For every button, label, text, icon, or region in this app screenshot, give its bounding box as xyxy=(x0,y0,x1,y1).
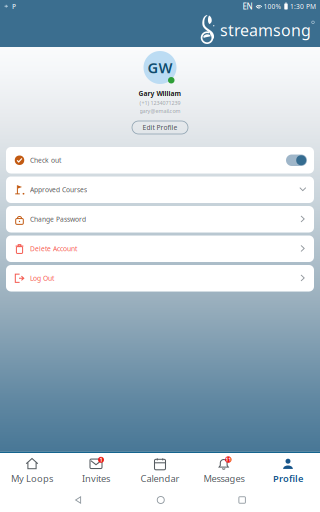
staticText: Edit Profile xyxy=(142,123,177,132)
button[interactable]: Recents xyxy=(239,497,245,503)
staticText: Check out xyxy=(30,156,61,165)
staticText: Log Out xyxy=(30,274,54,283)
staticText: 1 xyxy=(99,456,102,463)
staticText: 11 xyxy=(225,456,231,463)
staticText: GW xyxy=(147,58,172,77)
staticText: 100% xyxy=(263,2,281,11)
staticText: Delete Account xyxy=(30,244,77,253)
button[interactable]: My Loops xyxy=(0,452,64,489)
staticText: Profile xyxy=(273,472,303,485)
button[interactable]: Back xyxy=(75,496,83,504)
button[interactable]: Edit Profile xyxy=(132,121,188,134)
staticText: (+1) 1234071239 xyxy=(139,99,180,107)
staticText: Messages xyxy=(203,472,244,485)
staticText: Gary William xyxy=(138,89,181,98)
button[interactable]: Calendar xyxy=(128,452,192,489)
button[interactable]: Home xyxy=(157,496,164,503)
button[interactable]: Delete Account xyxy=(6,235,314,262)
staticText: Calendar xyxy=(140,472,179,485)
button[interactable]: Approved Courses xyxy=(6,176,314,203)
button[interactable]: Profile xyxy=(256,452,320,489)
staticText: Change Password xyxy=(30,215,86,224)
staticText: P xyxy=(12,2,16,11)
staticText: Approved Courses xyxy=(30,185,87,194)
staticText: EN xyxy=(242,1,252,12)
button[interactable]: 11 xyxy=(192,452,256,489)
button[interactable]: 1 xyxy=(64,452,128,489)
button[interactable]: Check out xyxy=(6,147,314,173)
staticText: streamsong xyxy=(220,19,311,41)
staticText: gary@email.com xyxy=(139,107,180,115)
button[interactable]: Change Password xyxy=(6,206,314,232)
staticText: Invites xyxy=(82,472,110,485)
staticText: 1:30 PM xyxy=(290,2,316,11)
button[interactable]: Log Out xyxy=(6,265,314,291)
staticText: My Loops xyxy=(11,472,53,485)
